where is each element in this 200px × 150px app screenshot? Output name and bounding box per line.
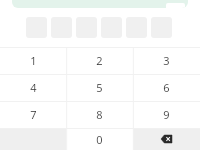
button[interactable]: 3 (133, 47, 200, 74)
button[interactable]: 6 (133, 74, 200, 101)
staticText: 4 (30, 80, 37, 95)
button[interactable]: 7 (0, 101, 66, 128)
button[interactable]: 8 (66, 101, 133, 128)
button[interactable]: 0 (66, 128, 133, 150)
staticText: 9 (163, 107, 170, 122)
staticText: 6 (163, 80, 170, 95)
button[interactable]: 4 (0, 74, 66, 101)
staticText: 0 (96, 132, 103, 147)
button[interactable]: 5 (66, 74, 133, 101)
staticText: 8 (96, 107, 103, 122)
staticText: 2 (96, 53, 103, 68)
staticText: 1 (30, 53, 37, 68)
button[interactable]: 1 (0, 47, 66, 74)
staticText: 7 (30, 107, 37, 122)
staticText: 3 (163, 53, 170, 68)
button[interactable]: Action (12, 0, 188, 8)
button[interactable]: 9 (133, 101, 200, 128)
staticText: 5 (96, 80, 103, 95)
button[interactable]: 2 (66, 47, 133, 74)
button[interactable]: Backspace (133, 128, 200, 150)
